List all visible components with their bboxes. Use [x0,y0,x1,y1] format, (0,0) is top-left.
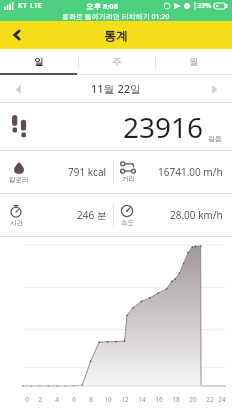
staticText: 8 [89,395,93,404]
staticText: 22 [206,395,214,404]
staticText: 20 [189,395,197,404]
staticText: 월 [189,56,199,68]
button[interactable]: 23916 [0,103,232,150]
staticText: 통계 [104,28,128,43]
staticText: 통화로 돌아가려면 터치하기 01:20 [62,12,170,21]
button[interactable]: Next day [204,79,224,99]
staticText: 33% [197,1,212,11]
staticText: 시간 [10,219,23,227]
staticText: 걸음 [208,134,222,143]
staticText: 10 [104,395,112,404]
button[interactable]: 주 [78,49,155,75]
button[interactable]: Back [0,21,34,49]
staticText: 11월 22일 [91,81,142,96]
button[interactable]: 거리 [114,151,232,193]
staticText: 속도 [121,219,134,227]
button[interactable]: 월 [155,49,232,75]
staticText: 791 kcal [68,165,107,179]
staticText: 2 [38,395,42,404]
staticText: 거리 [122,175,135,183]
staticText: 4 [55,395,59,404]
button[interactable]: 시간 [0,194,113,236]
staticText: 18 [172,395,180,404]
staticText: 칼로리 [9,176,29,184]
button[interactable]: 속도 [114,194,232,236]
staticText: 12 [121,395,129,404]
staticText: KT [18,1,27,11]
staticText: 주 [112,56,122,68]
button[interactable]: Previous day [8,79,28,99]
staticText: 23916 [123,108,204,146]
staticText: 6 [72,395,76,404]
staticText: 오후 8:08 [86,1,118,11]
button[interactable]: 칼로리 [0,151,113,193]
staticText: 일 [34,56,44,68]
staticText: 246 분 [77,208,107,222]
staticText: 0 [25,395,29,404]
staticText: 28.00 km/h [170,208,223,222]
staticText: LTE [30,1,42,11]
staticText: 14 [138,395,146,404]
staticText: 16 [155,395,163,404]
staticText: 24 [218,395,226,404]
button[interactable]: 일 [0,49,78,75]
staticText: 16741.00 m/h [158,165,223,179]
